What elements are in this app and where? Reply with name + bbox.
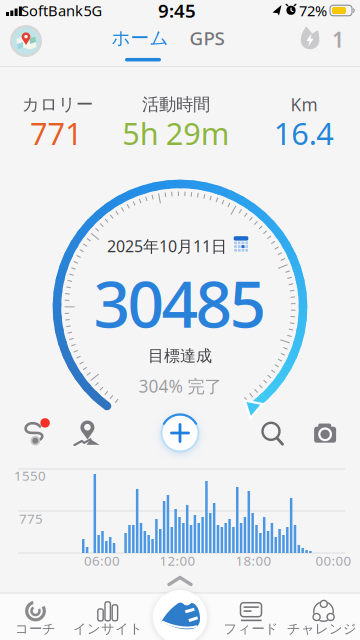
staticText: Km (290, 93, 317, 116)
staticText: 5G (83, 1, 102, 20)
staticText: カロリー (22, 94, 93, 115)
button[interactable]: Steps (0, 0, 360, 640)
staticText: 5h 29m (122, 113, 230, 153)
button[interactable]: Streak (0, 0, 360, 640)
button[interactable]: Camera (0, 0, 360, 640)
staticText: 771 (30, 113, 83, 153)
button[interactable]: Search (0, 0, 360, 640)
button[interactable]: Expand chart (0, 0, 360, 640)
staticText: 72% (299, 1, 327, 20)
button[interactable]: インサイト (0, 0, 360, 640)
staticText: チャレンジ (287, 620, 357, 637)
staticText: 9:45 (158, 0, 196, 23)
staticText: 304% 完了 (138, 374, 221, 397)
button[interactable]: Add activity (0, 0, 360, 640)
staticText: 目標達成 (148, 346, 212, 366)
staticText: 1 (332, 25, 344, 54)
staticText: 775 (19, 510, 43, 527)
staticText: 1550 (14, 467, 46, 484)
button[interactable]: Profile (0, 0, 360, 640)
staticText: フィード (223, 620, 278, 637)
button[interactable]: フィード (0, 0, 360, 640)
button[interactable]: Routes (0, 0, 360, 640)
staticText: 18:00 (235, 552, 271, 569)
staticText: ホーム (111, 26, 168, 49)
staticText: 30485 (93, 260, 266, 345)
staticText: 12:00 (159, 552, 195, 569)
staticText: 00:00 (315, 552, 351, 569)
staticText: 16.4 (274, 113, 334, 153)
button[interactable]: GPS (189, 26, 224, 50)
button[interactable]: ホーム (111, 26, 168, 49)
button[interactable]: チャレンジ (0, 0, 360, 640)
staticText: コーチ (15, 620, 56, 637)
button[interactable]: コーチ (0, 0, 360, 640)
button[interactable]: Select date (0, 0, 360, 640)
button[interactable]: Map (0, 0, 360, 640)
staticText: SoftBank (21, 1, 83, 20)
staticText: 06:00 (84, 552, 120, 569)
staticText: GPS (189, 26, 224, 50)
staticText: 2025年10月11日 (107, 235, 227, 257)
staticText: インサイト (73, 620, 143, 637)
staticText: 活動時間 (142, 94, 210, 115)
